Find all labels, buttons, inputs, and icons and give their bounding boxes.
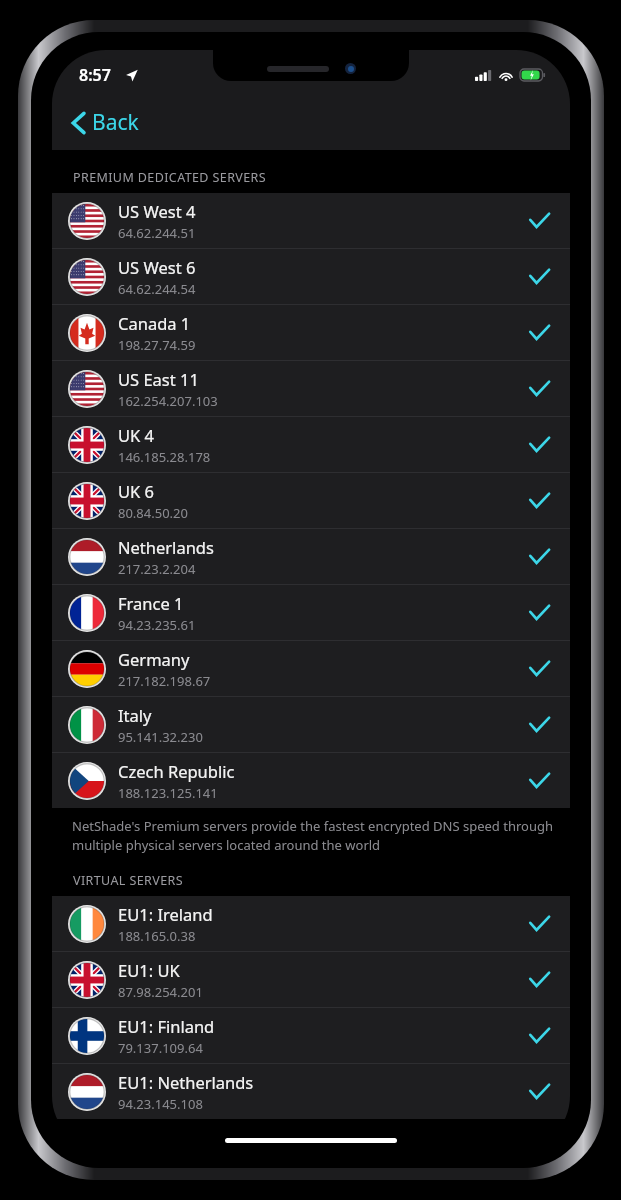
staticText: 95.141.32.230 (118, 728, 203, 746)
staticText: 217.182.198.67 (118, 672, 211, 690)
staticText: VIRTUAL SERVERS (73, 872, 183, 889)
button[interactable]: UK 6 (52, 473, 570, 528)
staticText: Germany (118, 648, 190, 670)
staticText: 80.84.50.20 (118, 504, 188, 522)
staticText: US West 6 (118, 256, 196, 278)
staticText: NetShade's Premium servers provide the f… (72, 817, 554, 854)
staticText: Canada 1 (118, 312, 191, 334)
staticText: 217.23.2.204 (118, 560, 196, 578)
staticText: Czech Republic (118, 760, 235, 782)
staticText: UK 4 (118, 424, 155, 446)
button[interactable]: Back (64, 102, 147, 143)
button[interactable]: US East 11 (52, 361, 570, 416)
staticText: 8:57 (79, 64, 111, 86)
staticText: EU1: UK (118, 959, 180, 981)
staticText: US East 11 (118, 368, 199, 390)
button[interactable]: Canada 1 (52, 305, 570, 360)
staticText: PREMIUM DEDICATED SERVERS (73, 169, 266, 186)
staticText: EU1: Finland (118, 1015, 215, 1037)
button[interactable]: EU1: Ireland (52, 896, 570, 951)
staticText: 64.62.244.51 (118, 224, 196, 242)
staticText: EU1: Ireland (118, 903, 213, 925)
button[interactable]: EU1: UK (52, 952, 570, 1007)
staticText: 79.137.109.64 (118, 1039, 203, 1057)
button[interactable]: EU1: Netherlands (52, 1064, 570, 1119)
staticText: UK 6 (118, 480, 155, 502)
button[interactable]: France 1 (52, 585, 570, 640)
staticText: 162.254.207.103 (118, 392, 218, 410)
button[interactable]: Italy (52, 697, 570, 752)
button[interactable]: EU1: Finland (52, 1008, 570, 1063)
staticText: 87.98.254.201 (118, 983, 203, 1001)
staticText: Netherlands (118, 536, 214, 558)
staticText: 188.165.0.38 (118, 927, 196, 945)
button[interactable]: Netherlands (52, 529, 570, 584)
staticText: 64.62.244.54 (118, 280, 196, 298)
button[interactable]: Germany (52, 641, 570, 696)
staticText: 146.185.28.178 (118, 448, 211, 466)
staticText: Italy (118, 704, 152, 726)
button[interactable]: UK 4 (52, 417, 570, 472)
staticText: EU1: Netherlands (118, 1071, 254, 1093)
staticText: France 1 (118, 592, 184, 614)
staticText: 198.27.74.59 (118, 336, 196, 354)
button[interactable]: US West 4 (52, 193, 570, 248)
button[interactable]: US West 6 (52, 249, 570, 304)
staticText: 188.123.125.141 (118, 784, 218, 802)
staticText: US West 4 (118, 200, 196, 222)
button[interactable]: Czech Republic (52, 753, 570, 808)
staticText: 94.23.235.61 (118, 616, 196, 634)
staticText: Back (92, 108, 139, 137)
staticText: 94.23.145.108 (118, 1095, 203, 1113)
